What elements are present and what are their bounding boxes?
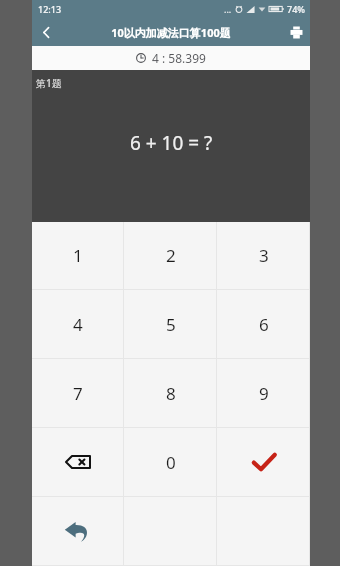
button[interactable]: 6 [217, 290, 310, 358]
button[interactable]: Undo [32, 497, 124, 565]
button[interactable]: Submit [217, 428, 310, 496]
staticText: 0 [166, 451, 176, 474]
staticText: 10以内加减法口算100题 [111, 25, 231, 40]
staticText: 6 [259, 313, 269, 336]
button[interactable]: 8 [124, 359, 217, 427]
staticText: 12:13 [38, 3, 62, 15]
button[interactable]: 5 [124, 290, 217, 358]
staticText: 7 [73, 382, 83, 405]
staticText: 4 : 58.399 [152, 50, 206, 66]
button[interactable]: 0 [124, 428, 217, 496]
button[interactable]: 2 [124, 222, 217, 289]
button[interactable]: 3 [217, 222, 310, 289]
staticText: 9 [259, 382, 269, 405]
staticText: 74% [287, 3, 305, 15]
staticText: 5 [166, 313, 176, 336]
button[interactable]: 7 [32, 359, 124, 427]
button[interactable]: 9 [217, 359, 310, 427]
button[interactable]: 1 [32, 222, 124, 289]
button[interactable]: Back [32, 18, 60, 46]
staticText: 2 [166, 244, 176, 267]
staticText: ... [224, 3, 232, 15]
staticText: 8 [166, 382, 176, 405]
staticText: 1 [73, 244, 83, 267]
button[interactable]: 4 [32, 290, 124, 358]
staticText: 3 [259, 244, 269, 267]
staticText: 第1题 [36, 76, 62, 90]
button[interactable]: Backspace [32, 428, 124, 496]
button[interactable]: Print [282, 18, 310, 46]
staticText: 6 + 10 = ? [130, 130, 213, 156]
staticText: 4 [73, 313, 83, 336]
